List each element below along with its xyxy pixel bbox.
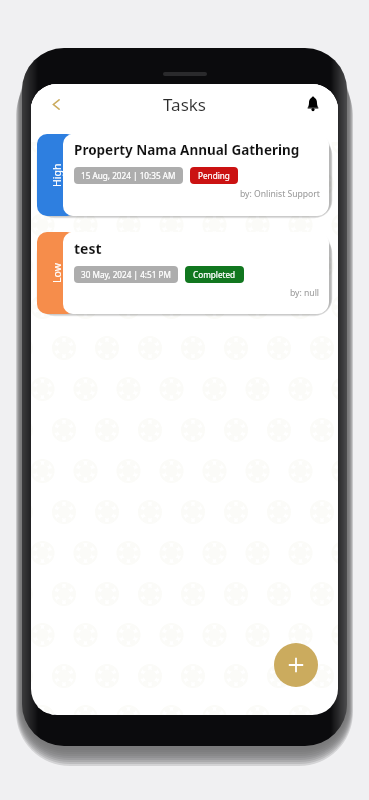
- staticText: High: [50, 163, 64, 187]
- button[interactable]: Back: [41, 89, 71, 119]
- staticText: Completed: [193, 269, 236, 280]
- staticText: 30 May, 2024 | 4:51 PM: [81, 269, 171, 280]
- staticText: 15 Aug, 2024 | 10:35 AM: [81, 170, 176, 181]
- button[interactable]: High: [37, 132, 332, 218]
- staticText: Low: [50, 263, 64, 283]
- button[interactable]: Low: [37, 230, 332, 316]
- staticText: test: [74, 239, 102, 258]
- staticText: Property Nama Annual Gathering: [74, 141, 300, 159]
- staticText: Pending: [198, 170, 230, 181]
- button[interactable]: Add task: [274, 643, 318, 687]
- staticText: by: Onlinist Support: [240, 188, 320, 200]
- staticText: Tasks: [163, 93, 206, 116]
- staticText: by: null: [290, 287, 320, 299]
- button[interactable]: Notifications: [298, 89, 328, 119]
